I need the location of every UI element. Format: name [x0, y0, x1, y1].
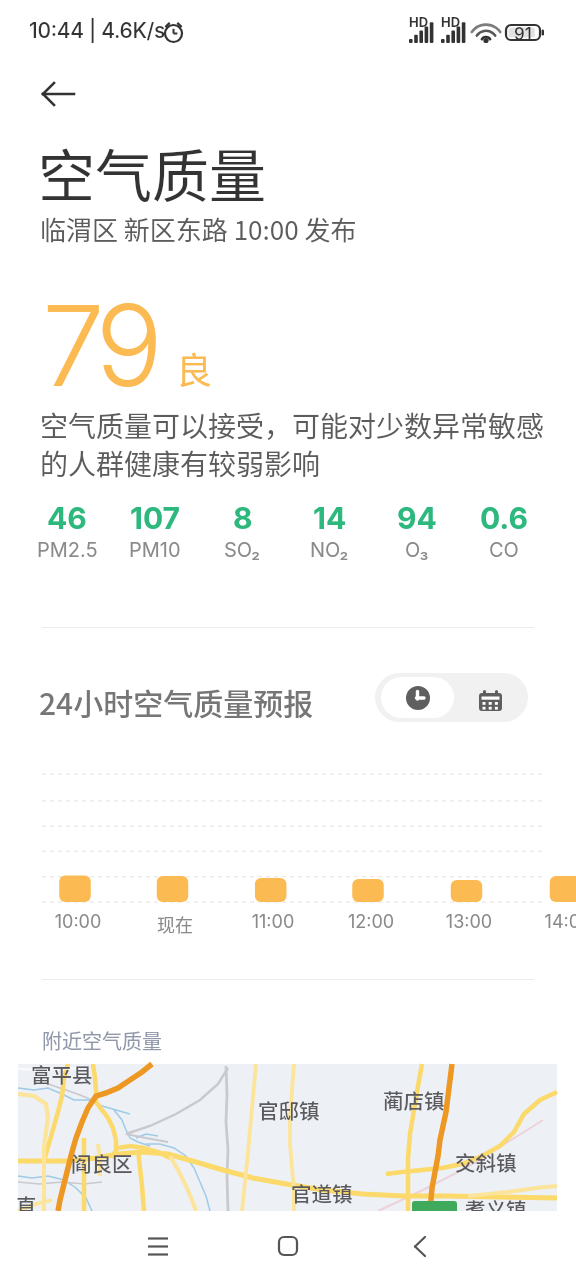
button[interactable]: Hourly	[381, 677, 454, 718]
staticText: 0.6	[480, 500, 528, 536]
button[interactable]: Recents	[118, 1221, 198, 1271]
staticText: NO₂	[310, 538, 349, 562]
button[interactable]: Back	[28, 70, 88, 118]
staticText: 10:00	[28, 911, 128, 933]
staticText: 阎良区	[71, 1148, 133, 1178]
staticText: O₃	[405, 538, 429, 562]
staticText: 富平县	[31, 1059, 93, 1089]
staticText: 直	[16, 1190, 37, 1220]
staticText: 91	[510, 24, 536, 45]
staticText: 12:00	[321, 911, 421, 933]
staticText: 10:44 | 4.6K/s	[29, 18, 166, 43]
staticText: 14	[313, 500, 347, 536]
staticText: 官邸镇	[258, 1095, 320, 1125]
button[interactable]: Home	[248, 1221, 328, 1271]
staticText: 官道镇	[291, 1178, 353, 1208]
staticText: 良	[176, 342, 213, 394]
staticText: HD	[409, 14, 429, 30]
staticText: 8	[233, 500, 253, 536]
staticText: CO	[489, 538, 519, 562]
staticText: 耆义镇	[465, 1194, 527, 1224]
staticText: 现在	[125, 911, 225, 937]
staticText: PM10	[129, 538, 181, 562]
button[interactable]: Back	[380, 1221, 460, 1271]
staticText: 46	[47, 500, 87, 536]
staticText: PM2.5	[37, 538, 98, 562]
button[interactable]: Daily	[456, 680, 524, 721]
staticText: 94	[397, 500, 437, 536]
staticText: 蔺店镇	[383, 1085, 445, 1115]
staticText: 交斜镇	[455, 1147, 517, 1177]
staticText: 空气质量	[38, 131, 266, 214]
staticText: 附近空气质量	[42, 1026, 162, 1055]
button[interactable]: Nearby air quality map	[18, 1064, 557, 1211]
staticText: 空气质量可以接受，可能对少数异常敏感 的人群健康有较弱影响	[40, 405, 545, 484]
staticText: SO₂	[224, 538, 261, 562]
staticText: 13:00	[419, 911, 519, 933]
staticText: HD	[441, 14, 461, 30]
staticText: 79	[42, 277, 155, 413]
staticText: 11:00	[223, 911, 323, 933]
staticText: 24小时空气质量预报	[39, 680, 314, 723]
staticText: 107	[130, 500, 181, 536]
staticText: 临渭区 新区东路 10:00 发布	[40, 210, 357, 248]
staticText: 14:00	[518, 911, 576, 933]
